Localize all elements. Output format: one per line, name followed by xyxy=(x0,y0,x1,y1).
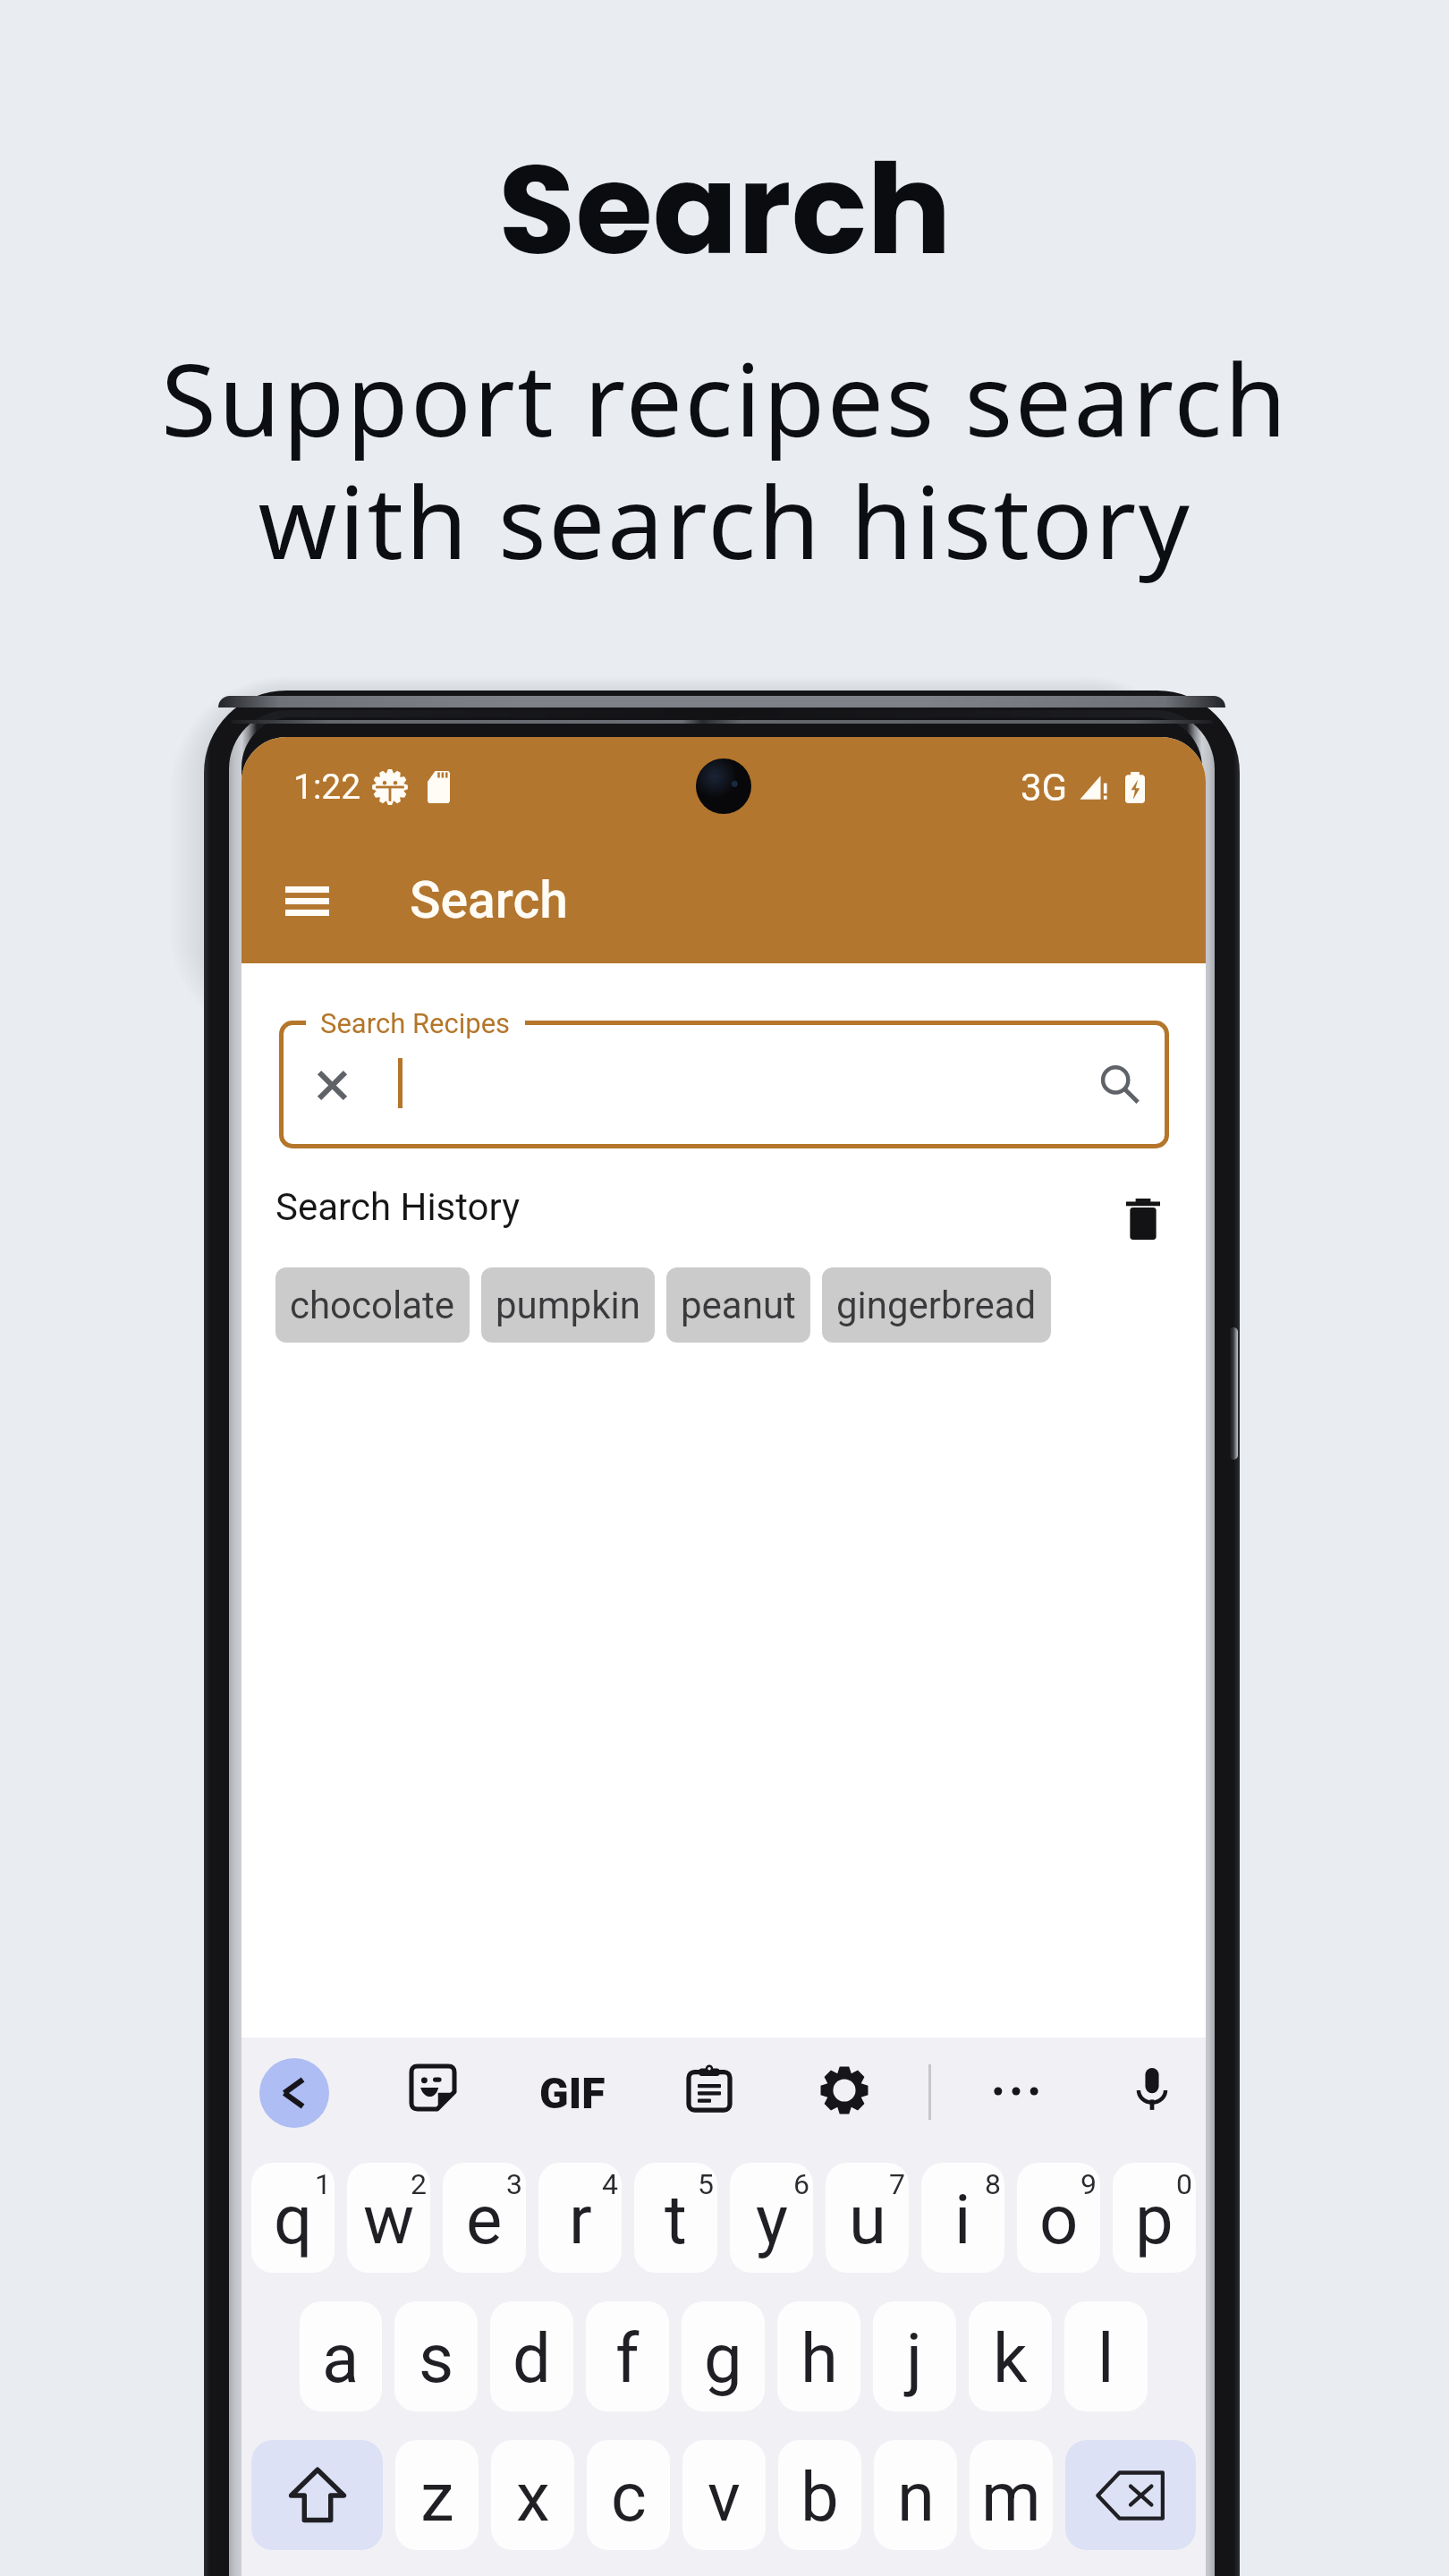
button[interactable]: Keyboard settings xyxy=(807,2053,882,2128)
button[interactable]: y xyxy=(730,2163,813,2273)
staticText: y xyxy=(756,2180,788,2259)
staticText: q xyxy=(274,2180,313,2259)
button[interactable]: Search xyxy=(1089,1054,1151,1116)
staticText: k xyxy=(993,2318,1028,2398)
staticText: v xyxy=(708,2457,741,2537)
button[interactable]: j xyxy=(873,2301,956,2411)
button[interactable]: Clipboard xyxy=(674,2053,745,2124)
button[interactable]: Shift xyxy=(251,2440,383,2550)
button[interactable]: chocolate xyxy=(275,1267,470,1343)
staticText: j xyxy=(906,2318,923,2398)
button[interactable]: i xyxy=(921,2163,1004,2273)
button[interactable]: s xyxy=(394,2301,478,2411)
staticText: 6 xyxy=(793,2167,809,2201)
staticText: Search Recipes xyxy=(320,1007,511,1039)
button[interactable]: More options xyxy=(978,2053,1055,2130)
button[interactable]: Stickers xyxy=(398,2053,468,2123)
button[interactable]: Open navigation drawer xyxy=(258,852,356,950)
button[interactable]: p xyxy=(1113,2163,1196,2273)
staticText: s xyxy=(419,2318,454,2398)
button[interactable]: h xyxy=(777,2301,860,2411)
button[interactable]: u xyxy=(826,2163,909,2273)
button[interactable]: peanut xyxy=(666,1267,810,1343)
staticText: x xyxy=(516,2457,550,2537)
button[interactable]: v xyxy=(682,2440,766,2550)
staticText: g xyxy=(704,2318,742,2398)
staticText: z xyxy=(420,2457,454,2537)
staticText: i xyxy=(954,2180,971,2259)
staticText: u xyxy=(849,2180,886,2259)
staticText: c xyxy=(611,2457,647,2537)
button[interactable]: c xyxy=(587,2440,670,2550)
button[interactable]: gingerbread xyxy=(822,1267,1051,1343)
button[interactable]: a xyxy=(300,2301,382,2411)
button[interactable]: m xyxy=(970,2440,1053,2550)
staticText: Search xyxy=(498,122,952,297)
button[interactable]: e xyxy=(443,2163,526,2273)
button[interactable]: q xyxy=(251,2163,335,2273)
staticText: 0 xyxy=(1176,2167,1192,2201)
button[interactable]: g xyxy=(682,2301,765,2411)
staticText: l xyxy=(1097,2318,1114,2398)
button[interactable]: Voice input xyxy=(1115,2053,1189,2126)
staticText: gingerbread xyxy=(836,1284,1037,1327)
staticText: 5 xyxy=(698,2167,714,2201)
staticText: m xyxy=(981,2457,1041,2537)
staticText: Search History xyxy=(275,1185,521,1229)
staticText: o xyxy=(1039,2180,1079,2259)
staticText: r xyxy=(569,2180,592,2259)
staticText: b xyxy=(801,2457,839,2537)
button[interactable]: r xyxy=(538,2163,622,2273)
staticText: chocolate xyxy=(290,1284,455,1327)
staticText: GIF xyxy=(539,2068,606,2118)
button[interactable]: GIF xyxy=(534,2057,611,2129)
staticText: a xyxy=(322,2318,360,2398)
button[interactable]: t xyxy=(634,2163,717,2273)
staticText: Support recipes search with search histo… xyxy=(161,329,1289,588)
button[interactable]: w xyxy=(347,2163,430,2273)
button[interactable]: f xyxy=(586,2301,669,2411)
button[interactable]: Clear text xyxy=(301,1054,363,1116)
staticText: t xyxy=(665,2180,687,2259)
staticText: peanut xyxy=(681,1284,796,1327)
staticText: 3 xyxy=(506,2167,522,2201)
staticText: 3G xyxy=(1021,766,1068,809)
staticText: h xyxy=(801,2318,838,2398)
button[interactable]: d xyxy=(490,2301,573,2411)
staticText: pumpkin xyxy=(496,1284,640,1327)
button[interactable]: b xyxy=(778,2440,861,2550)
staticText: w xyxy=(363,2180,415,2259)
button[interactable]: Backspace xyxy=(1065,2440,1196,2550)
staticText: d xyxy=(513,2318,551,2398)
button[interactable]: Clear search history xyxy=(1107,1183,1179,1255)
staticText: e xyxy=(466,2180,503,2259)
staticText: 8 xyxy=(985,2167,1001,2201)
button[interactable]: l xyxy=(1064,2301,1148,2411)
button[interactable]: Clear text xyxy=(279,1021,1169,1148)
staticText: 1 xyxy=(315,2167,331,2201)
button[interactable]: z xyxy=(395,2440,479,2550)
staticText: f xyxy=(615,2318,640,2398)
button[interactable]: o xyxy=(1017,2163,1100,2273)
button[interactable]: x xyxy=(491,2440,574,2550)
staticText: 9 xyxy=(1080,2167,1097,2201)
button[interactable]: pumpkin xyxy=(481,1267,655,1343)
staticText: n xyxy=(897,2457,935,2537)
button[interactable]: k xyxy=(969,2301,1052,2411)
staticText: 7 xyxy=(889,2167,905,2201)
staticText: 2 xyxy=(411,2167,427,2201)
button[interactable]: n xyxy=(874,2440,957,2550)
staticText: Search xyxy=(410,870,568,930)
staticText: p xyxy=(1135,2180,1174,2259)
button[interactable]: Back xyxy=(259,2058,329,2128)
staticText: 1:22 xyxy=(293,767,361,808)
staticText: 4 xyxy=(602,2167,618,2201)
